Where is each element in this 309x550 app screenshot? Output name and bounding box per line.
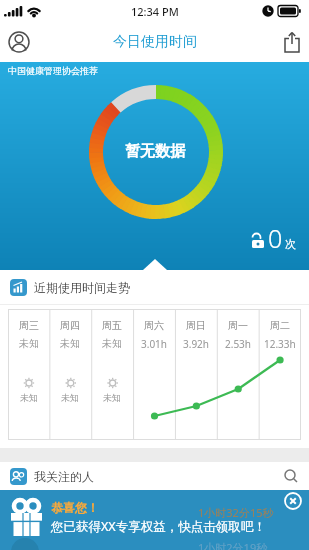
staticText: 您已获得XX专享权益，快点击领取吧！ bbox=[51, 518, 266, 535]
staticText: 周二 bbox=[270, 319, 290, 332]
staticText: 周三 bbox=[19, 319, 39, 332]
button[interactable]: 我关注的人 bbox=[10, 462, 299, 490]
staticText: 次 bbox=[285, 237, 296, 251]
button[interactable]: 近期使用时间走势 bbox=[10, 270, 309, 304]
button[interactable] bbox=[281, 31, 303, 53]
staticText: 1小时2分19秒 bbox=[198, 540, 268, 550]
button[interactable] bbox=[284, 492, 302, 510]
staticText: 近期使用时间走势 bbox=[34, 280, 130, 295]
staticText: 3.92h bbox=[183, 337, 210, 351]
staticText: 暂无数据 bbox=[125, 142, 185, 161]
button[interactable] bbox=[8, 31, 30, 53]
staticText: 未知 bbox=[102, 337, 122, 350]
staticText: 未知 bbox=[20, 392, 38, 403]
staticText: 12.33h bbox=[264, 337, 296, 351]
staticText: 2.53h bbox=[225, 337, 252, 351]
staticText: 0 bbox=[268, 221, 283, 255]
staticText: 1小时32分15秒 bbox=[198, 505, 274, 520]
staticText: 周日 bbox=[186, 319, 206, 332]
staticText: 3.01h bbox=[141, 337, 168, 351]
staticText: 我关注的人 bbox=[34, 469, 94, 484]
staticText: 未知 bbox=[19, 337, 39, 350]
staticText: 恭喜您！ bbox=[51, 500, 99, 515]
staticText: 周五 bbox=[102, 319, 122, 332]
button[interactable]: 1小时32分15秒 bbox=[0, 490, 309, 550]
staticText: 周四 bbox=[60, 319, 80, 332]
staticText: 周六 bbox=[144, 319, 164, 332]
staticText: 未知 bbox=[103, 392, 121, 403]
staticText: 12:34 PM bbox=[131, 4, 179, 19]
staticText: 中国健康管理协会推荐 bbox=[8, 65, 98, 76]
staticText: 周一 bbox=[228, 319, 248, 332]
staticText: 今日使用时间 bbox=[113, 33, 197, 51]
staticText: 未知 bbox=[61, 392, 79, 403]
staticText: 未知 bbox=[60, 337, 80, 350]
button[interactable]: 0 bbox=[251, 221, 296, 255]
